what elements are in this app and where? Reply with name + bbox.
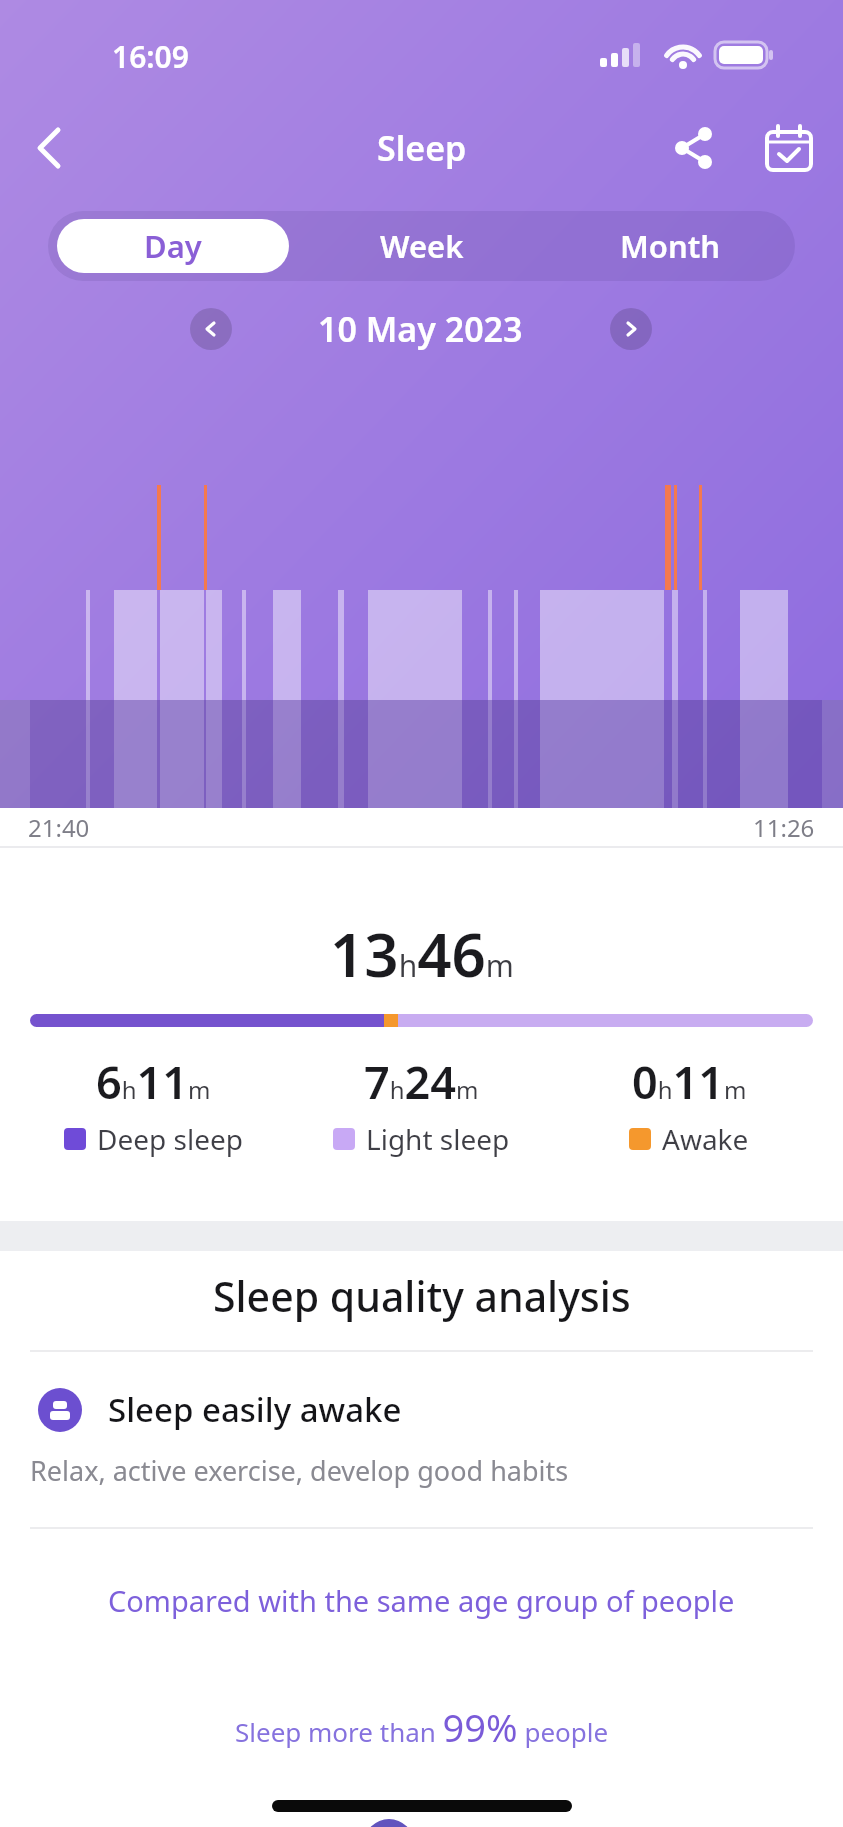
button[interactable] <box>610 308 652 350</box>
button[interactable]: Day <box>57 219 289 273</box>
button[interactable]: Sleep easily awake <box>38 1387 843 1432</box>
staticText: Month <box>620 225 721 267</box>
button[interactable] <box>36 128 64 168</box>
staticText: Sleep quality analysis <box>213 1268 631 1324</box>
button[interactable]: Week <box>297 211 546 281</box>
staticText: Sleep more than 99% people <box>235 1701 609 1753</box>
staticText: Sleep easily awake <box>108 1387 402 1432</box>
staticText: 10 May 2023 <box>318 306 523 352</box>
button[interactable]: Compared with the same age group of peop… <box>0 1581 843 1620</box>
staticText: Deep sleep <box>97 1120 243 1158</box>
staticText: 11:26 <box>753 811 815 844</box>
staticText: Light sleep <box>366 1120 510 1158</box>
staticText: Day <box>144 225 202 267</box>
staticText: Compared with the same age group of peop… <box>108 1581 735 1620</box>
button[interactable] <box>190 308 232 350</box>
staticText: 21:40 <box>28 811 90 844</box>
staticText: Sleep <box>377 125 467 171</box>
staticText: 13h46m <box>330 913 514 995</box>
staticText: 0h11m <box>632 1051 747 1112</box>
staticText: 7h24m <box>364 1051 479 1112</box>
button[interactable] <box>765 124 813 172</box>
button[interactable] <box>673 126 717 170</box>
staticText: 16:09 <box>112 36 189 77</box>
staticText: Awake <box>662 1120 749 1158</box>
staticText: Week <box>380 225 464 267</box>
staticText: Relax, active exercise, develop good hab… <box>30 1452 569 1489</box>
staticText: 6h11m <box>96 1051 211 1112</box>
button[interactable]: Month <box>546 211 795 281</box>
